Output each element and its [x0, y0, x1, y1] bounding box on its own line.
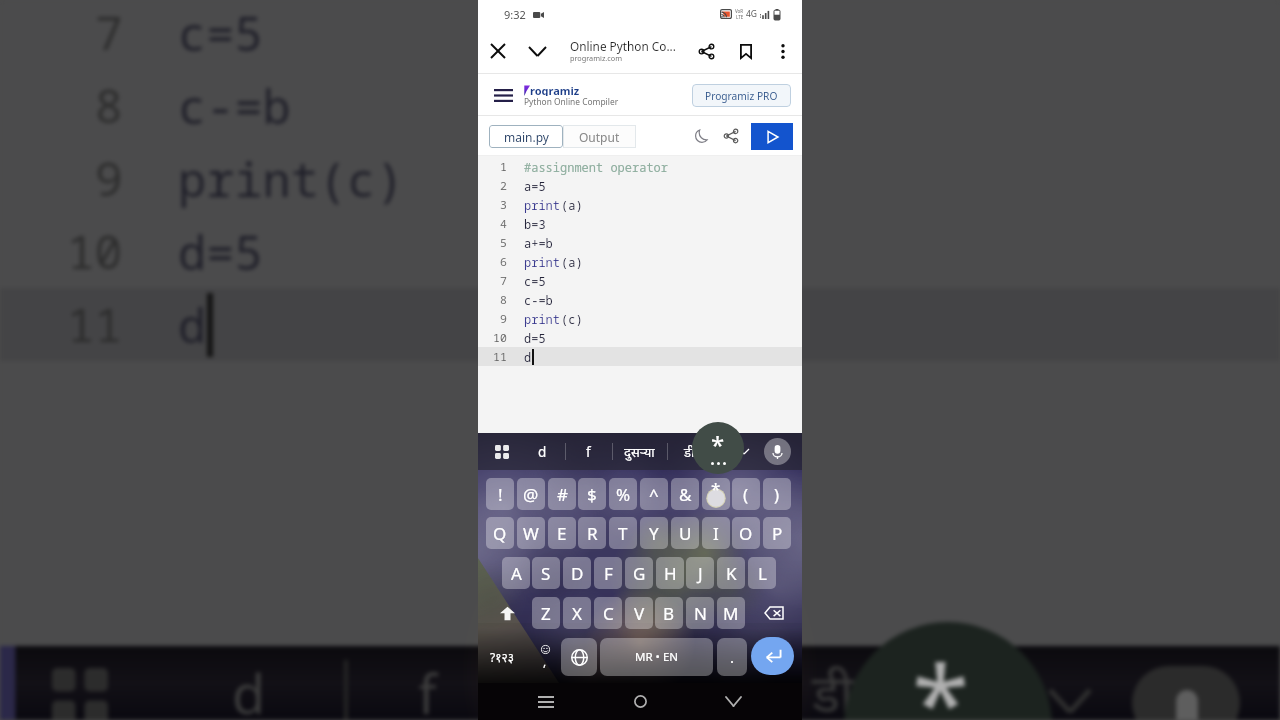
button[interactable]: d [520, 433, 564, 470]
button[interactable]: f [566, 433, 610, 470]
staticText: , [543, 653, 547, 669]
button[interactable]: E [548, 517, 576, 549]
button[interactable]: A [502, 557, 530, 589]
staticText: Output [579, 129, 620, 145]
button[interactable]: Expand suggestions [736, 433, 752, 470]
button[interactable]: S [532, 557, 560, 589]
staticText: 6 [500, 254, 507, 270]
button[interactable]: Voice input [764, 438, 791, 465]
button[interactable]: X [563, 597, 591, 629]
staticText: 8 [95, 74, 123, 137]
button[interactable]: Y [640, 517, 668, 549]
staticText: 9 [95, 147, 123, 210]
staticText: 9:32 [504, 7, 526, 22]
staticText: MR • EN [635, 649, 679, 665]
staticText: डी [812, 656, 854, 720]
button[interactable]: $ [578, 478, 606, 510]
button[interactable]: @ [517, 478, 545, 510]
staticText: S [541, 562, 551, 585]
staticText: Programiz PRO [705, 89, 778, 103]
button[interactable]: Share [691, 28, 721, 74]
staticText: 8 [500, 292, 507, 308]
button[interactable]: Close [482, 28, 514, 74]
staticText: 11 [67, 293, 123, 356]
staticText: main.py [504, 129, 549, 145]
button[interactable]: U [671, 517, 699, 549]
staticText: 10 [493, 330, 507, 346]
staticText: 1 [500, 159, 507, 175]
staticText: F [604, 562, 613, 585]
button[interactable]: Collapse [521, 28, 553, 74]
button[interactable]: ) [763, 478, 791, 510]
button[interactable]: डी [667, 433, 711, 470]
button[interactable]: main.py [489, 125, 563, 148]
button[interactable]: Z [532, 597, 560, 629]
button[interactable]: Run [751, 123, 793, 150]
button[interactable]: . [717, 638, 747, 676]
button[interactable]: # [548, 478, 576, 510]
button[interactable]: Recents [526, 683, 566, 720]
staticText: C [603, 602, 614, 625]
button[interactable]: Home [620, 683, 660, 720]
staticText: VoR [735, 8, 744, 14]
button[interactable]: F [594, 557, 622, 589]
button[interactable]: & [671, 478, 699, 510]
button[interactable]: J [686, 557, 714, 589]
button[interactable]: Emoji [530, 635, 560, 679]
staticText: #assignment operator [524, 159, 669, 175]
staticText: c-=b [178, 74, 291, 138]
button[interactable]: ! [486, 478, 514, 510]
staticText: 7 [500, 273, 507, 289]
button[interactable]: Shift [486, 597, 528, 629]
button[interactable]: B [655, 597, 683, 629]
button[interactable]: D [563, 557, 591, 589]
button[interactable]: P [763, 517, 791, 549]
button[interactable]: Dark mode [689, 123, 715, 149]
button[interactable]: T [609, 517, 637, 549]
button[interactable]: * [702, 478, 730, 510]
button[interactable]: R [578, 517, 606, 549]
button[interactable]: K [717, 557, 745, 589]
button[interactable]: H [656, 557, 684, 589]
button[interactable]: M [717, 597, 745, 629]
button[interactable]: V [625, 597, 653, 629]
button[interactable]: Keyboard menu [491, 433, 513, 470]
button[interactable]: दुसऱ्या [617, 433, 661, 470]
button[interactable]: Share code [718, 123, 744, 149]
button[interactable]: Q [486, 517, 514, 549]
button[interactable]: Menu [490, 82, 516, 108]
button[interactable]: % [609, 478, 637, 510]
button[interactable]: Enter [751, 637, 794, 675]
staticText: D [571, 562, 584, 585]
button[interactable]: MR • EN [600, 638, 713, 676]
staticText: . [730, 647, 735, 667]
staticText: (c) [561, 311, 583, 327]
button[interactable]: Language [561, 638, 597, 676]
staticText: (a) [561, 254, 583, 270]
staticText: print [524, 311, 561, 327]
button[interactable]: C [594, 597, 622, 629]
button[interactable]: W [517, 517, 545, 549]
button[interactable]: ?१२३ [480, 635, 524, 679]
staticText: B [663, 602, 675, 625]
button[interactable]: More options [770, 28, 796, 74]
staticText: # [557, 483, 568, 506]
staticText: & [679, 483, 692, 506]
staticText: 7 [95, 1, 123, 64]
button[interactable]: Output [563, 125, 636, 148]
button[interactable]: ^ [640, 478, 668, 510]
staticText: a+=b [524, 235, 553, 251]
button[interactable]: Programiz PRO [692, 84, 791, 107]
staticText: @ [523, 483, 539, 506]
button[interactable]: L [748, 557, 776, 589]
button[interactable]: Bookmark [731, 28, 761, 74]
button[interactable]: O [732, 517, 760, 549]
staticText: P [772, 522, 783, 545]
button[interactable]: I [702, 517, 730, 549]
button[interactable]: Backspace [753, 597, 794, 629]
button[interactable]: Back [713, 683, 753, 720]
button[interactable]: N [686, 597, 714, 629]
staticText: V [634, 602, 645, 625]
button[interactable]: G [625, 557, 653, 589]
button[interactable]: ( [732, 478, 760, 510]
